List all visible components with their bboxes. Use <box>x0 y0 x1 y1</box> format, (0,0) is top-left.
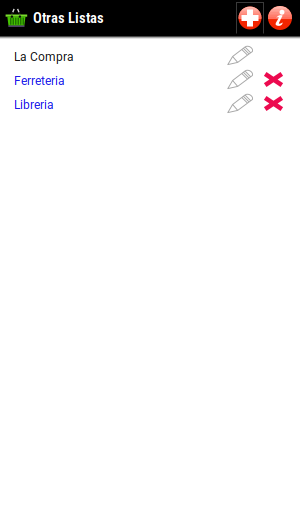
button[interactable]: Information <box>264 2 296 34</box>
staticText: Libreria <box>14 98 54 112</box>
staticText: La Compra <box>14 50 74 64</box>
button[interactable]: Edit Libreria <box>223 93 258 117</box>
button[interactable]: Edit La Compra <box>223 45 258 69</box>
staticText: Ferreteria <box>14 74 65 88</box>
button[interactable]: Delete Ferreteria <box>258 69 286 93</box>
button[interactable]: Add list <box>236 2 264 34</box>
button[interactable]: Libreria <box>14 93 54 117</box>
button[interactable]: Edit Ferreteria <box>223 69 258 93</box>
button[interactable]: Ferreteria <box>14 69 65 93</box>
button[interactable]: La Compra <box>14 45 74 69</box>
button[interactable]: Delete Libreria <box>258 93 286 117</box>
staticText: Otras Listas <box>33 9 104 27</box>
